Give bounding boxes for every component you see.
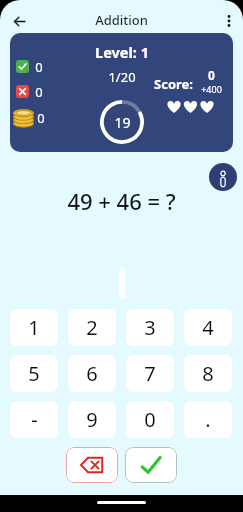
staticText: 6 (86, 360, 98, 387)
staticText: Level: 1 (95, 42, 149, 62)
staticText: 7 (144, 360, 156, 387)
staticText: 49 + 46 = ? (67, 186, 176, 216)
button[interactable] (209, 163, 237, 191)
staticText: 2 (86, 314, 98, 341)
staticText: 4 (202, 314, 214, 341)
button[interactable]: 4 (184, 309, 232, 346)
staticText: 0 (35, 83, 43, 101)
staticText: . (205, 406, 211, 433)
staticText: 9 (86, 406, 98, 433)
staticText: 19 (114, 113, 131, 132)
button[interactable] (66, 447, 118, 483)
staticText: 1/20 (108, 68, 136, 86)
staticText: 1 (28, 314, 40, 341)
staticText: 0 (35, 58, 43, 76)
button[interactable]: - (10, 401, 58, 438)
staticText: 8 (202, 360, 214, 387)
button[interactable] (125, 447, 177, 483)
staticText: +400 (201, 83, 222, 95)
staticText: 0 (208, 67, 215, 83)
staticText: 0 (144, 406, 156, 433)
button[interactable]: 6 (68, 355, 116, 392)
button[interactable]: 8 (184, 355, 232, 392)
button[interactable] (6, 8, 32, 34)
button[interactable]: 1 (10, 309, 58, 346)
button[interactable]: 9 (68, 401, 116, 438)
staticText: Addition (95, 11, 148, 29)
staticText: - (31, 406, 38, 433)
staticText: Score: (154, 75, 193, 93)
button[interactable] (216, 8, 242, 34)
button[interactable]: 3 (126, 309, 174, 346)
button[interactable]: 2 (68, 309, 116, 346)
button[interactable]: 7 (126, 355, 174, 392)
button[interactable]: 0 (126, 401, 174, 438)
staticText: 0 (37, 109, 45, 127)
staticText: 5 (28, 360, 40, 387)
button[interactable]: . (184, 401, 232, 438)
button[interactable]: 5 (10, 355, 58, 392)
staticText: 3 (144, 314, 156, 341)
